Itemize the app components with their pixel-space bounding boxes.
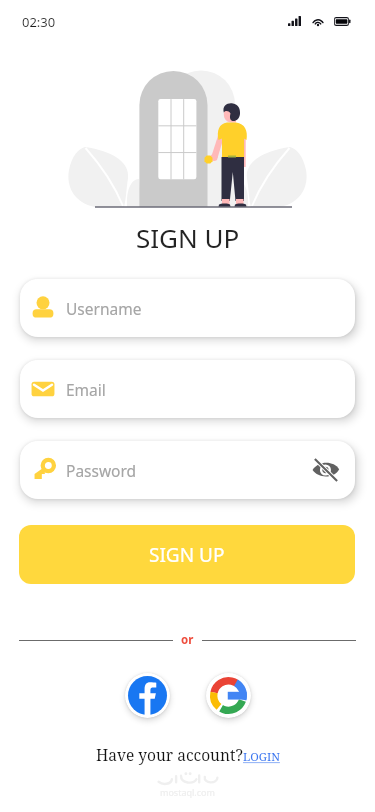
button[interactable]: Password xyxy=(20,441,355,499)
staticText: Password xyxy=(66,460,137,481)
button[interactable]: Username xyxy=(20,279,355,337)
staticText: SIGN UP xyxy=(149,542,225,568)
button[interactable]: Toggle password visibility xyxy=(311,455,341,485)
staticText: or xyxy=(181,632,194,648)
button[interactable]: LOGIN xyxy=(243,749,280,765)
staticText: 02:30 xyxy=(22,13,56,31)
button[interactable]: Email xyxy=(20,360,355,418)
staticText: Email xyxy=(66,379,106,400)
button[interactable]: Sign up with Google xyxy=(206,673,251,718)
staticText: SIGN UP xyxy=(136,220,240,255)
staticText: mostaql.com xyxy=(160,786,215,798)
staticText: LOGIN xyxy=(243,749,280,765)
button[interactable]: Sign up with Facebook xyxy=(125,673,170,718)
staticText: Have your account? xyxy=(96,744,243,765)
staticText: Username xyxy=(66,298,142,319)
button[interactable]: SIGN UP xyxy=(19,525,355,584)
